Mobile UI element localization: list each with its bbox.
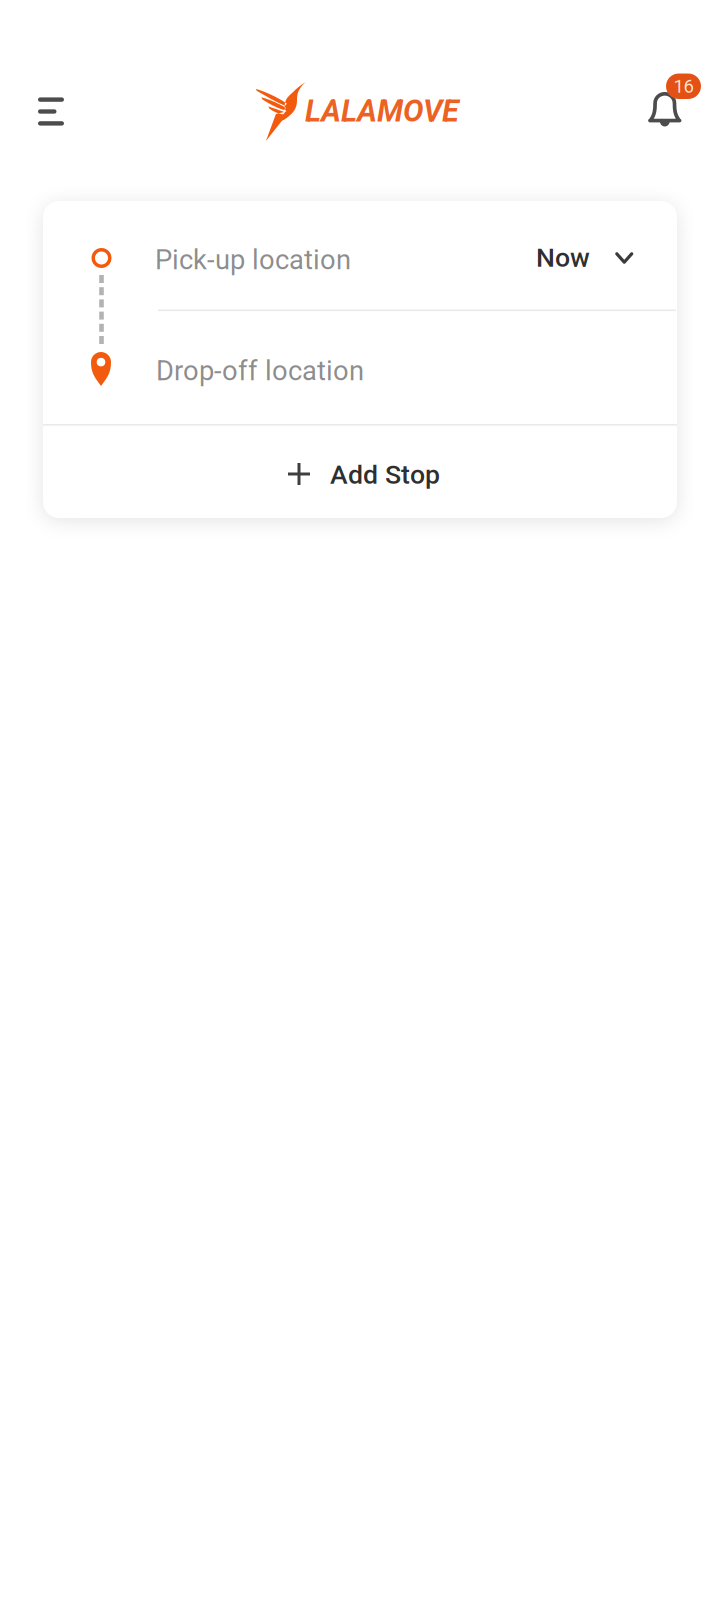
staticText: Now xyxy=(536,242,590,273)
staticText: LALAMOVE xyxy=(305,93,459,129)
staticText: Add Stop xyxy=(330,459,440,490)
staticText: Pick-up location xyxy=(155,244,351,276)
button[interactable]: Now xyxy=(473,201,677,310)
button[interactable]: Menu xyxy=(12,72,90,150)
staticText: 16 xyxy=(673,75,693,97)
button[interactable]: Pick-up location xyxy=(43,201,473,310)
button[interactable]: Add Stop xyxy=(43,425,677,518)
button[interactable]: Notifications xyxy=(635,69,720,155)
staticText: Drop-off location xyxy=(156,355,364,387)
button[interactable]: Drop-off location xyxy=(43,311,677,424)
